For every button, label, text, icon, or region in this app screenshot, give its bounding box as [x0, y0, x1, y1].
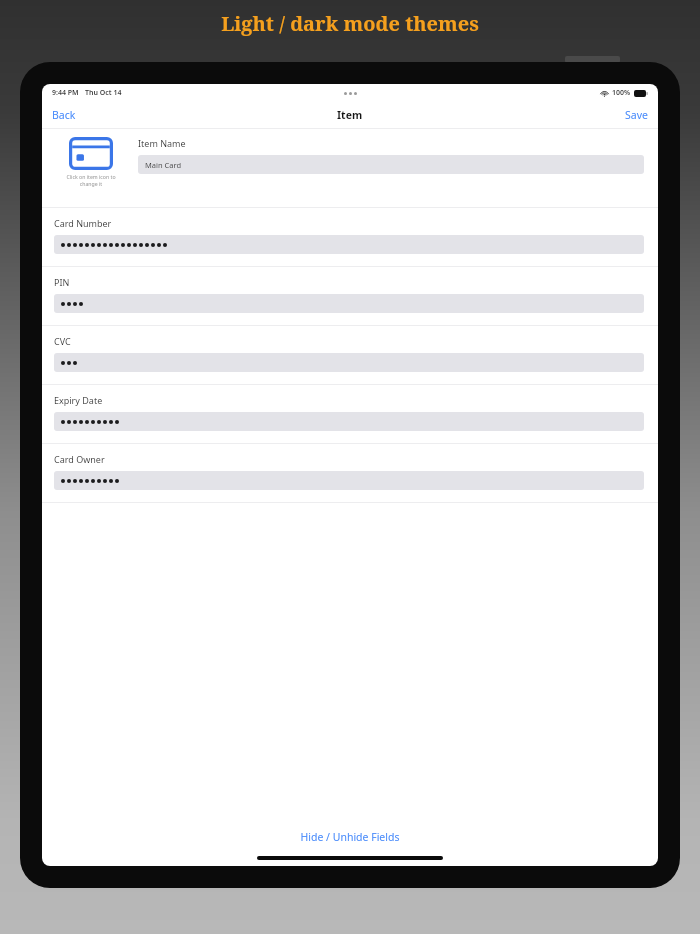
staticText: PIN [54, 276, 70, 288]
staticText: Card Number [54, 217, 112, 229]
button[interactable]: Card Number [42, 208, 658, 266]
staticText: CVC [54, 335, 71, 347]
staticText: Expiry Date [54, 394, 103, 406]
staticText: change it [54, 180, 128, 187]
staticText: Light / dark mode themes [0, 10, 700, 37]
staticText: Click on item icon to [54, 173, 128, 180]
button[interactable]: Card Owner [42, 444, 658, 502]
staticText: Item [337, 108, 363, 122]
staticText: Hide / Unhide Fields [42, 830, 658, 844]
staticText: Thu Oct 14 [85, 88, 122, 98]
button[interactable]: Back [46, 104, 82, 126]
button[interactable]: Hide / Unhide Fields [42, 824, 658, 850]
button[interactable]: Save [619, 104, 654, 126]
button[interactable]: Change item icon [54, 137, 128, 187]
button[interactable]: Main Card [138, 155, 644, 174]
staticText: 100% [612, 88, 631, 98]
staticText: Save [625, 108, 648, 122]
button[interactable]: Expiry Date [42, 385, 658, 443]
staticText: Main Card [145, 160, 182, 170]
staticText: Item Name [138, 137, 186, 149]
button[interactable]: CVC [42, 326, 658, 384]
staticText: Card Owner [54, 453, 105, 465]
button[interactable]: PIN [42, 267, 658, 325]
staticText: Back [52, 108, 76, 122]
staticText: 9:44 PM [52, 88, 79, 98]
